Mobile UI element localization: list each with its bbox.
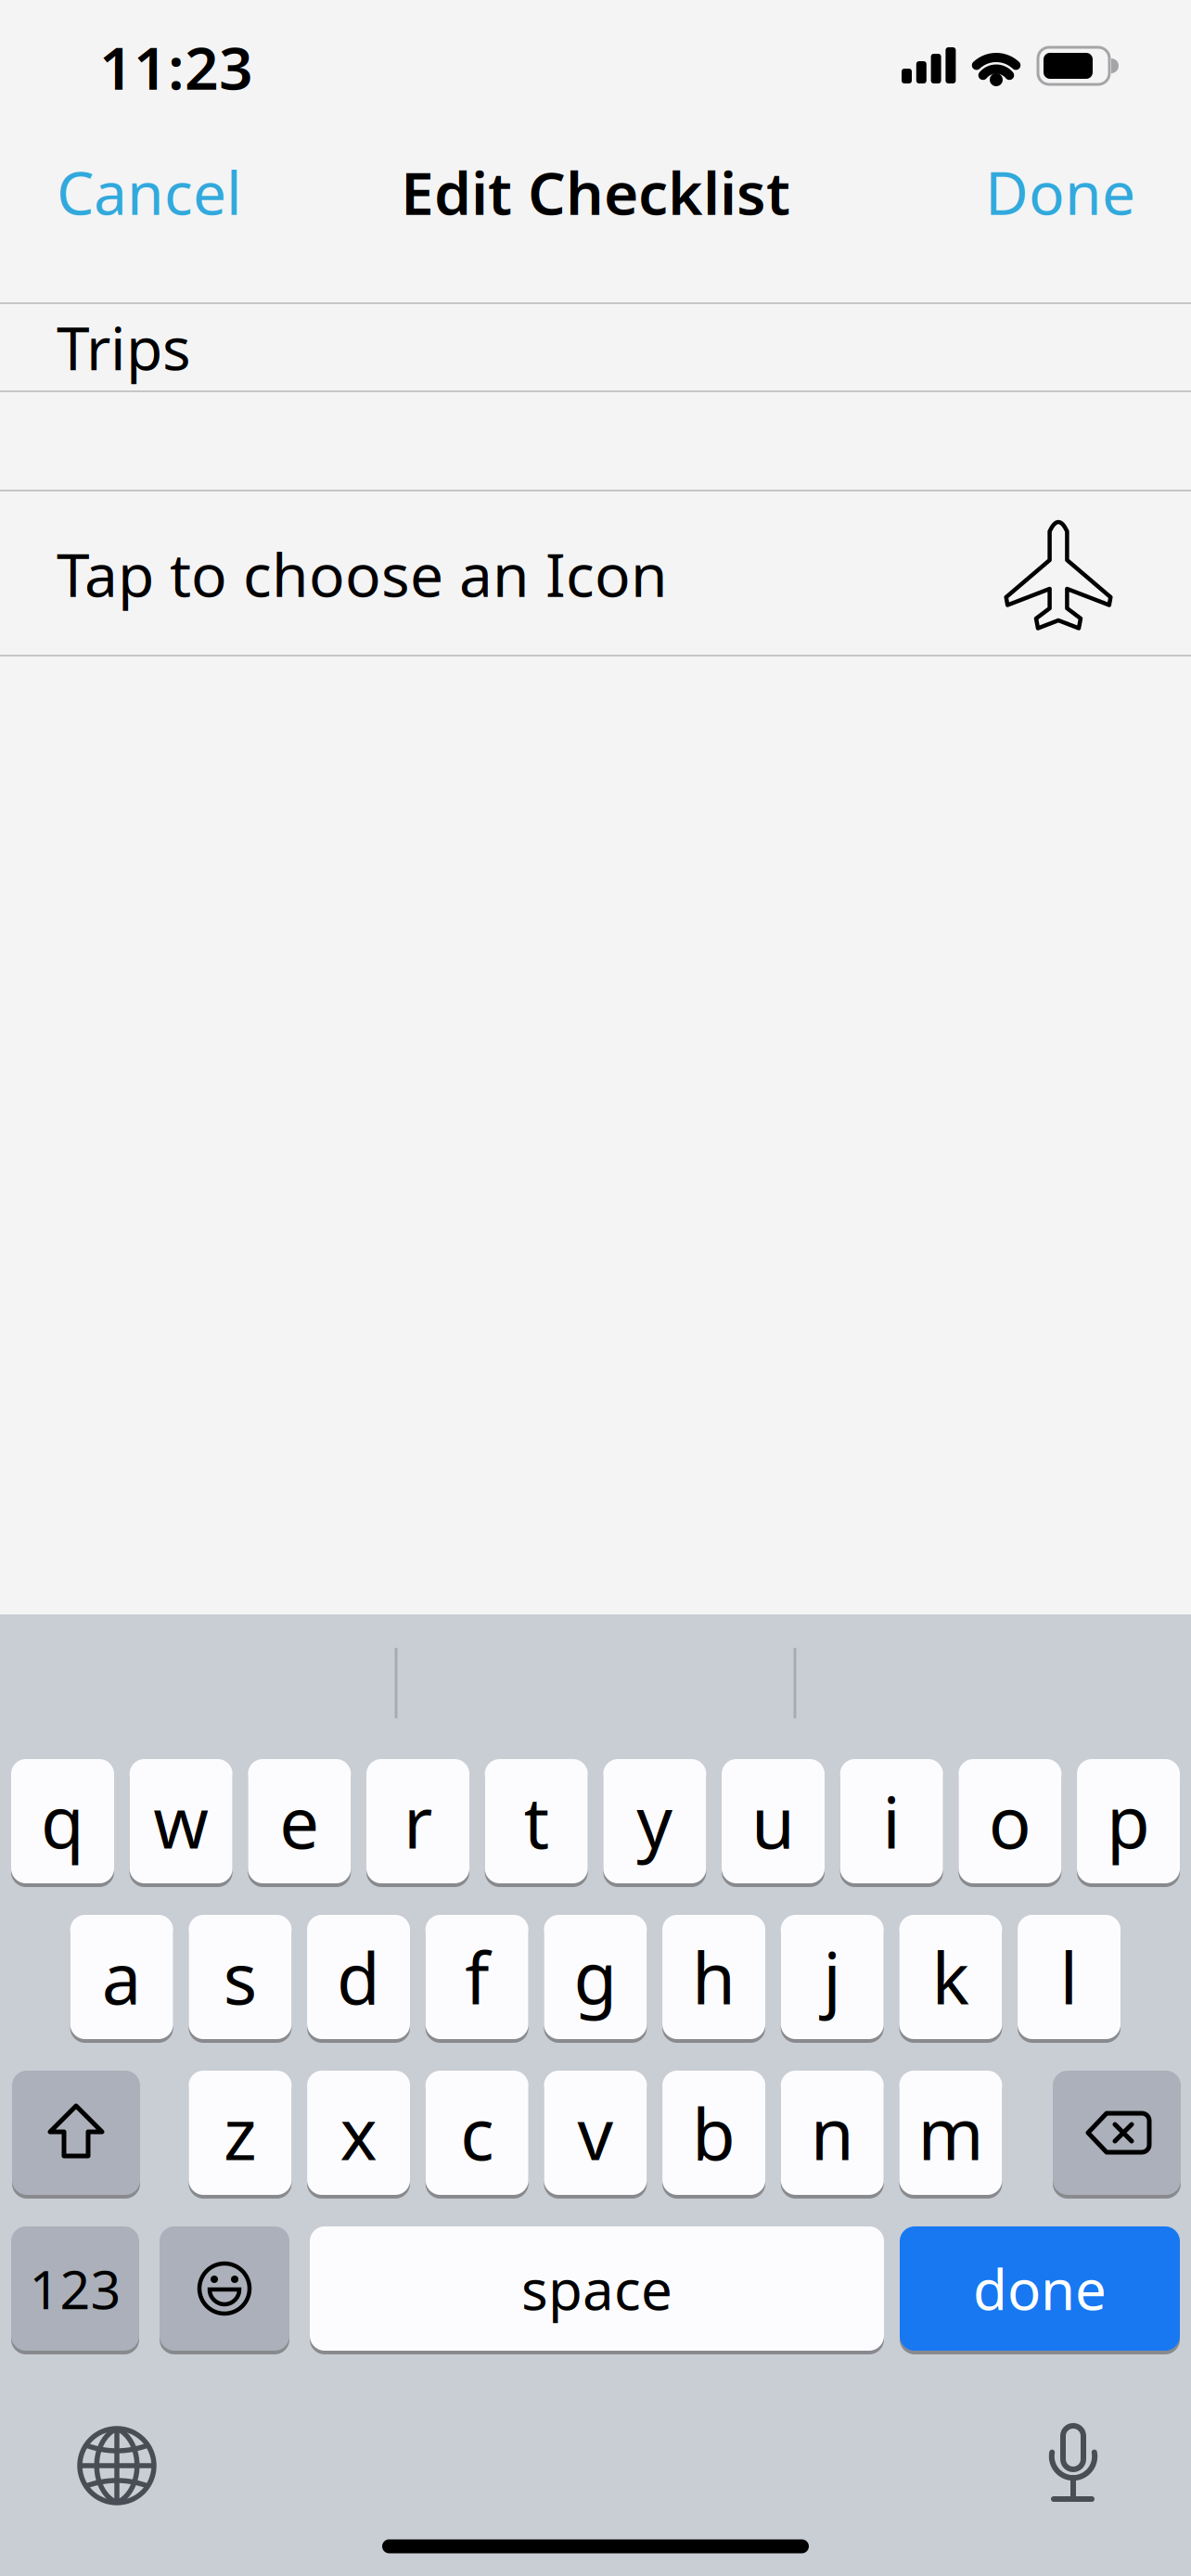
staticText: m [918, 2086, 984, 2179]
staticText: d [337, 1930, 380, 2024]
button[interactable]: w [130, 1759, 233, 1883]
button[interactable]: o [959, 1759, 1062, 1883]
button[interactable]: z [189, 2071, 292, 2195]
staticText: space [521, 2252, 672, 2326]
staticText: b [692, 2086, 736, 2179]
staticText: done [973, 2252, 1107, 2326]
button[interactable]: Trips [57, 304, 1191, 390]
staticText: k [932, 1930, 970, 2024]
button[interactable]: h [662, 1915, 765, 2039]
button[interactable]: s [189, 1915, 292, 2039]
button[interactable]: Done [857, 150, 1135, 234]
button[interactable]: i [840, 1759, 943, 1883]
staticText: i [882, 1774, 901, 1868]
button[interactable]: e [248, 1759, 351, 1883]
button[interactable]: c [425, 2071, 528, 2195]
staticText: y [637, 1774, 673, 1868]
staticText: h [692, 1930, 736, 2024]
staticText: g [574, 1930, 617, 2024]
button[interactable]: x [307, 2071, 410, 2195]
button[interactable]: v [544, 2071, 647, 2195]
button[interactable]: done [900, 2226, 1180, 2351]
staticText: s [223, 1930, 257, 2024]
button[interactable]: g [544, 1915, 647, 2039]
button[interactable]: Shift [12, 2071, 140, 2195]
staticText: q [41, 1774, 84, 1868]
button[interactable]: a [70, 1915, 173, 2039]
staticText: r [403, 1774, 432, 1868]
button[interactable]: Dictate [1022, 2413, 1124, 2515]
staticText: p [1107, 1774, 1150, 1868]
button[interactable]: d [307, 1915, 410, 2039]
staticText: 11:23 [99, 27, 253, 106]
button[interactable]: y [603, 1759, 706, 1883]
button[interactable]: u [722, 1759, 825, 1883]
staticText: Done [985, 153, 1135, 231]
button[interactable]: q [11, 1759, 114, 1883]
staticText: e [279, 1774, 319, 1868]
button[interactable]: Tap to choose an Icon [0, 491, 1191, 655]
button[interactable]: p [1077, 1759, 1180, 1883]
staticText: o [989, 1774, 1031, 1868]
staticText: w [153, 1774, 209, 1868]
button[interactable]: n [781, 2071, 884, 2195]
button[interactable]: b [662, 2071, 765, 2195]
button[interactable]: t [485, 1759, 588, 1883]
button[interactable]: r [366, 1759, 469, 1883]
staticText: Cancel [57, 153, 242, 231]
staticText: x [340, 2086, 377, 2179]
staticText: 123 [29, 2253, 121, 2324]
staticText: v [577, 2086, 613, 2179]
staticText: Trips [57, 308, 191, 387]
staticText: f [465, 1930, 489, 2024]
button[interactable]: Next keyboard [66, 2415, 168, 2517]
button[interactable]: Emoji [160, 2226, 289, 2351]
staticText: c [460, 2086, 494, 2179]
button[interactable]: 123 [11, 2226, 139, 2351]
button[interactable]: m [899, 2071, 1002, 2195]
button[interactable]: j [781, 1915, 884, 2039]
staticText: z [223, 2086, 257, 2179]
staticText: j [823, 1930, 841, 2024]
button[interactable]: space [310, 2226, 884, 2351]
button[interactable]: f [425, 1915, 528, 2039]
button[interactable]: l [1018, 1915, 1121, 2039]
button[interactable]: Delete [1053, 2071, 1181, 2195]
staticText: t [524, 1774, 549, 1868]
staticText: a [102, 1930, 142, 2024]
button[interactable]: k [899, 1915, 1002, 2039]
staticText: l [1060, 1930, 1078, 2024]
staticText: Tap to choose an Icon [57, 535, 668, 613]
staticText: Edit Checklist [401, 153, 790, 231]
button[interactable]: Cancel [57, 150, 335, 234]
staticText: n [811, 2086, 854, 2179]
staticText: u [751, 1774, 795, 1868]
